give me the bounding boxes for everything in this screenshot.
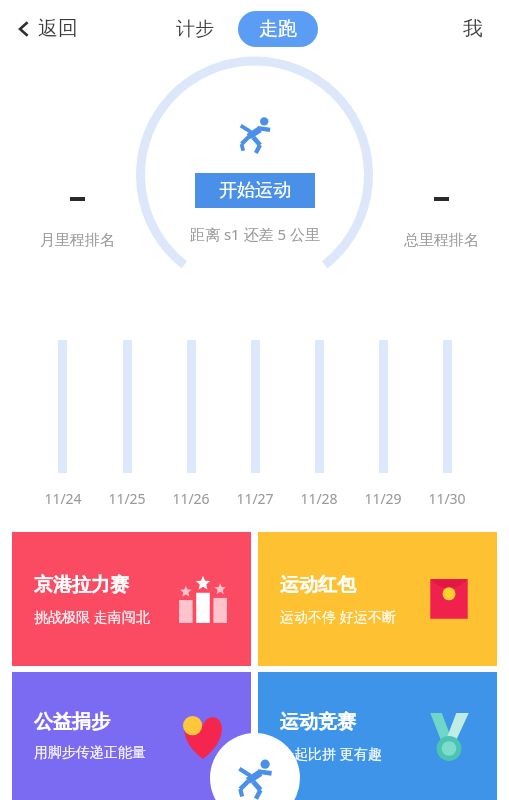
- staticText: 11/24: [44, 489, 82, 508]
- button[interactable]: 计步: [170, 13, 220, 45]
- button[interactable]: 走跑: [238, 11, 318, 47]
- staticText: 11/25: [108, 489, 146, 508]
- staticText: 运动红包: [280, 573, 356, 597]
- staticText: 11/26: [172, 489, 210, 508]
- staticText: 总里程排名: [404, 231, 479, 250]
- staticText: 计步: [176, 17, 214, 41]
- staticText: 11/30: [428, 489, 466, 508]
- staticText: 挑战极限 走南闯北: [34, 607, 150, 626]
- staticText: 一起比拼 更有趣: [280, 744, 382, 763]
- staticText: 运动竞赛: [280, 710, 356, 734]
- staticText: 公益捐步: [34, 710, 110, 734]
- staticText: 我: [463, 16, 483, 41]
- staticText: 京港拉力赛: [34, 573, 129, 597]
- staticText: 11/28: [300, 489, 338, 508]
- other: Back: [14, 19, 34, 39]
- button[interactable]: Back: [14, 16, 78, 41]
- staticText: 距离 s1 还差 5 公里: [190, 224, 320, 244]
- button[interactable]: 京港拉力赛: [12, 532, 251, 666]
- button[interactable]: 公益捐步: [12, 672, 251, 800]
- staticText: 月里程排名: [40, 231, 115, 250]
- staticText: 11/29: [364, 489, 402, 508]
- button[interactable]: Start run: [210, 733, 300, 800]
- staticText: 开始运动: [219, 179, 291, 202]
- staticText: 运动不停 好运不断: [280, 607, 396, 626]
- staticText: 走跑: [259, 17, 297, 41]
- staticText: 11/27: [236, 489, 274, 508]
- staticText: 用脚步传递正能量: [34, 744, 146, 762]
- button[interactable]: 开始运动: [195, 173, 315, 208]
- button[interactable]: 运动红包: [258, 532, 497, 666]
- staticText: 返回: [38, 16, 78, 41]
- button[interactable]: 运动竞赛: [258, 672, 497, 800]
- button[interactable]: 我: [459, 12, 487, 45]
